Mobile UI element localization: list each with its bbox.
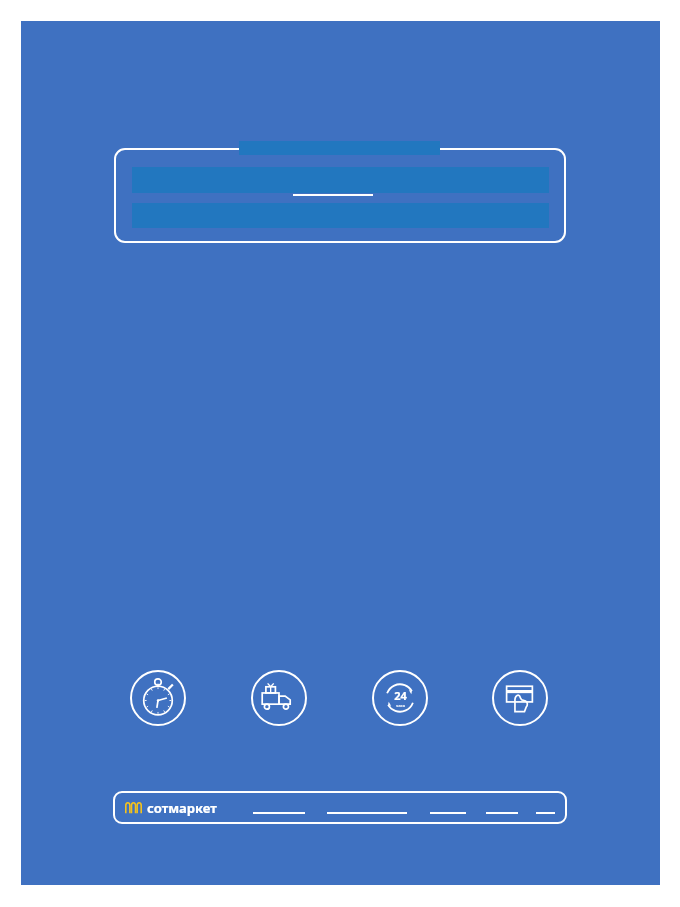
button[interactable]: Courier delivery <box>251 670 307 726</box>
button[interactable] <box>114 148 566 243</box>
button[interactable]: Card payment <box>492 670 548 726</box>
staticText: сотмаркет <box>147 799 217 817</box>
staticText: часа <box>396 703 405 708</box>
staticText: 24 <box>394 688 407 703</box>
button[interactable]: 24 hour service <box>372 670 428 726</box>
button[interactable]: сотмаркет <box>113 791 567 824</box>
button[interactable]: Fast delivery <box>130 670 186 726</box>
